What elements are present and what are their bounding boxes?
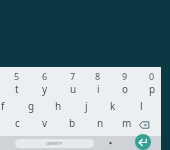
- button[interactable]: QWERTY: [15, 139, 94, 148]
- button[interactable]: t: [4, 80, 30, 98]
- staticText: t: [15, 82, 19, 96]
- staticText: o: [122, 82, 129, 96]
- button[interactable]: b: [59, 114, 85, 132]
- staticText: l: [140, 99, 143, 113]
- staticText: v: [42, 116, 48, 130]
- button[interactable]: 7: [60, 67, 86, 85]
- staticText: 6: [42, 70, 48, 82]
- staticText: k: [110, 99, 116, 113]
- staticText: 8: [95, 70, 101, 82]
- button[interactable]: v: [32, 114, 58, 132]
- button[interactable]: k: [100, 97, 126, 115]
- staticText: j: [85, 99, 88, 113]
- button[interactable]: j: [73, 97, 99, 115]
- button[interactable]: 6: [32, 67, 58, 85]
- staticText: h: [55, 99, 62, 113]
- staticText: u: [70, 82, 77, 96]
- button[interactable]: n: [87, 114, 113, 132]
- button[interactable]: 9: [112, 67, 138, 85]
- button[interactable]: u: [60, 80, 86, 98]
- staticText: QWERTY: [46, 141, 63, 146]
- staticText: m: [122, 116, 132, 130]
- button[interactable]: g: [18, 97, 44, 115]
- staticText: b: [69, 116, 76, 130]
- staticText: 0: [149, 70, 155, 82]
- button[interactable]: y: [32, 80, 58, 98]
- staticText: n: [97, 116, 104, 130]
- staticText: y: [42, 82, 48, 96]
- button[interactable]: [135, 134, 151, 150]
- staticText: 7: [70, 70, 76, 82]
- staticText: 9: [122, 70, 128, 82]
- button[interactable]: 0: [139, 67, 165, 85]
- button[interactable]: f: [0, 97, 16, 115]
- button[interactable]: o: [112, 80, 138, 98]
- button[interactable]: i: [85, 80, 111, 98]
- staticText: 5: [14, 70, 20, 82]
- staticText: p: [149, 82, 156, 96]
- button[interactable]: c: [4, 114, 30, 132]
- button[interactable]: p: [139, 80, 165, 98]
- button[interactable]: l: [128, 97, 154, 115]
- staticText: g: [28, 99, 35, 113]
- button[interactable]: m: [114, 114, 140, 132]
- button[interactable]: h: [45, 97, 71, 115]
- button[interactable]: [139, 121, 150, 129]
- button[interactable]: [104, 136, 117, 149]
- button[interactable]: 8: [85, 67, 111, 85]
- staticText: f: [1, 99, 5, 113]
- staticText: c: [15, 116, 20, 130]
- staticText: i: [97, 82, 100, 96]
- button[interactable]: 5: [4, 67, 30, 85]
